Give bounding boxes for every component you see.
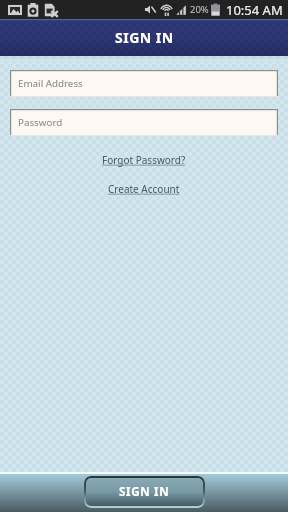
staticText: SIGN IN bbox=[119, 484, 170, 500]
button[interactable]: Email Address bbox=[10, 70, 278, 97]
other: File removed bbox=[44, 3, 58, 17]
button[interactable]: Create Account bbox=[104, 181, 184, 197]
other: Screenshot captured bbox=[8, 4, 22, 16]
staticText: 10:54 AM bbox=[226, 1, 283, 19]
staticText: Password bbox=[18, 116, 63, 129]
other: Signal strength bbox=[176, 4, 187, 16]
other: Storage cleanup bbox=[27, 3, 39, 17]
other: Sound muted bbox=[144, 4, 156, 15]
other: Wi-Fi connected bbox=[160, 3, 173, 16]
button[interactable]: Forgot Password? bbox=[98, 152, 190, 168]
other: Battery 20 percent bbox=[211, 3, 220, 16]
staticText: SIGN IN bbox=[115, 28, 174, 47]
staticText: 20% bbox=[190, 3, 209, 16]
staticText: Email Address bbox=[18, 77, 83, 90]
button[interactable]: SIGN IN bbox=[84, 476, 205, 508]
button[interactable]: Password bbox=[10, 109, 278, 136]
